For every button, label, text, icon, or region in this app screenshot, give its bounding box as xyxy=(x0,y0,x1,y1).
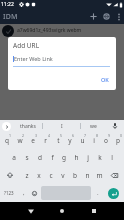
staticText: b xyxy=(73,171,77,180)
button[interactable]: Add download xyxy=(87,10,100,23)
staticText: r xyxy=(44,136,47,145)
staticText: , xyxy=(23,189,25,197)
staticText: a xyxy=(12,153,16,162)
staticText: 8 xyxy=(96,133,99,138)
staticText: . xyxy=(97,189,99,197)
staticText: 5 xyxy=(60,133,63,138)
staticText: j xyxy=(87,153,89,162)
staticText: e xyxy=(31,136,35,145)
button[interactable]: t xyxy=(52,132,64,149)
button[interactable]: e xyxy=(26,132,39,149)
button[interactable]: k xyxy=(94,149,106,166)
button[interactable]: d xyxy=(33,149,46,166)
button[interactable]: m xyxy=(93,166,105,184)
staticText: q xyxy=(5,136,9,145)
staticText: u xyxy=(80,136,85,145)
button[interactable]: p xyxy=(112,132,124,149)
staticText: 6 xyxy=(72,133,75,138)
staticText: OK xyxy=(101,76,109,83)
staticText: 3 xyxy=(35,133,38,138)
button[interactable]: b xyxy=(69,166,81,184)
staticText: d xyxy=(38,153,42,162)
button[interactable]: , xyxy=(18,184,29,202)
button[interactable]: q xyxy=(0,132,13,149)
button[interactable]: Browser xyxy=(100,10,113,23)
button[interactable]: s xyxy=(20,149,33,166)
button[interactable]: . xyxy=(92,184,103,202)
staticText: w xyxy=(17,136,23,145)
button[interactable]: i xyxy=(88,132,100,149)
button[interactable]: Enter xyxy=(103,184,124,202)
staticText: g xyxy=(62,153,66,162)
button[interactable]: Backspace xyxy=(105,166,124,184)
button[interactable]: we xyxy=(81,120,105,132)
button[interactable]: o xyxy=(100,132,112,149)
staticText: ?123 xyxy=(4,190,14,196)
staticText: 9 xyxy=(108,133,111,138)
button[interactable]: c xyxy=(45,166,57,184)
button[interactable]: a xyxy=(7,149,20,166)
staticText: a7w69d1z_493svigrk webm xyxy=(17,27,82,34)
button[interactable]: l xyxy=(106,149,118,166)
staticText: 4 xyxy=(48,133,51,138)
button[interactable]: Home xyxy=(51,202,73,220)
button[interactable]: v xyxy=(57,166,69,184)
staticText: v xyxy=(61,171,65,180)
staticText: y xyxy=(68,136,72,145)
button[interactable]: f xyxy=(46,149,58,166)
button[interactable]: a7w69d1z_493svigrk webm xyxy=(0,24,124,37)
button[interactable]: Recent apps xyxy=(83,202,105,220)
button[interactable]: r xyxy=(39,132,52,149)
staticText: c xyxy=(49,171,53,180)
staticText: z xyxy=(25,171,29,180)
staticText: I xyxy=(61,123,63,130)
button[interactable]: Voice input xyxy=(105,120,124,132)
staticText: 7 xyxy=(84,133,87,138)
staticText: h xyxy=(74,153,79,162)
button[interactable]: z xyxy=(20,166,33,184)
button[interactable]: g xyxy=(58,149,70,166)
button[interactable]: h xyxy=(70,149,82,166)
button[interactable]: OK xyxy=(99,75,111,84)
staticText: Add URL xyxy=(13,41,40,50)
button[interactable]: w xyxy=(13,132,26,149)
button[interactable]: j xyxy=(82,149,94,166)
staticText: IDM xyxy=(3,12,18,22)
button[interactable]: ?123 xyxy=(0,184,18,202)
staticText: 11:22 xyxy=(1,1,14,8)
staticText: x xyxy=(37,171,41,180)
button[interactable]: Emoji xyxy=(29,184,40,202)
button[interactable]: y xyxy=(64,132,76,149)
staticText: m xyxy=(96,171,103,180)
button[interactable]: Shift xyxy=(0,166,20,184)
staticText: t xyxy=(57,136,60,145)
staticText: i xyxy=(93,136,95,145)
button[interactable]: Back xyxy=(20,202,42,220)
staticText: 2 xyxy=(22,133,25,138)
staticText: n xyxy=(85,171,90,180)
staticText: l xyxy=(111,153,113,162)
staticText: p xyxy=(116,136,120,145)
button[interactable]: More options xyxy=(113,11,124,22)
staticText: 1 xyxy=(9,133,12,138)
button[interactable]: I xyxy=(43,120,80,132)
staticText: s xyxy=(25,153,29,162)
staticText: o xyxy=(104,136,108,145)
button[interactable]: u xyxy=(76,132,88,149)
button[interactable]: x xyxy=(33,166,45,184)
button[interactable]: More suggestions xyxy=(0,120,13,132)
button[interactable]: n xyxy=(81,166,93,184)
staticText: we xyxy=(90,123,97,130)
staticText: 0 xyxy=(120,133,123,138)
button[interactable]: thanks xyxy=(13,120,42,132)
staticText: thanks xyxy=(20,123,36,130)
staticText: k xyxy=(98,153,102,162)
staticText: f xyxy=(51,153,54,162)
staticText: Enter Web Link xyxy=(14,55,53,62)
